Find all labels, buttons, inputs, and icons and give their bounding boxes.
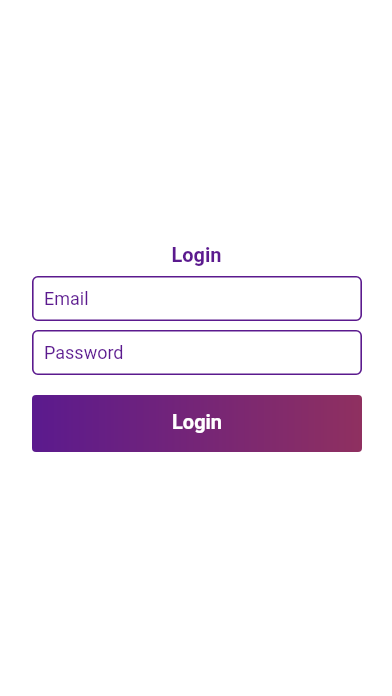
staticText: Password — [44, 342, 124, 363]
staticText: Email — [44, 288, 89, 309]
button[interactable]: Password — [32, 330, 362, 375]
staticText: Login — [172, 410, 223, 433]
staticText: Login — [171, 243, 222, 266]
button[interactable]: Login — [32, 395, 362, 452]
button[interactable]: Email — [32, 276, 362, 321]
